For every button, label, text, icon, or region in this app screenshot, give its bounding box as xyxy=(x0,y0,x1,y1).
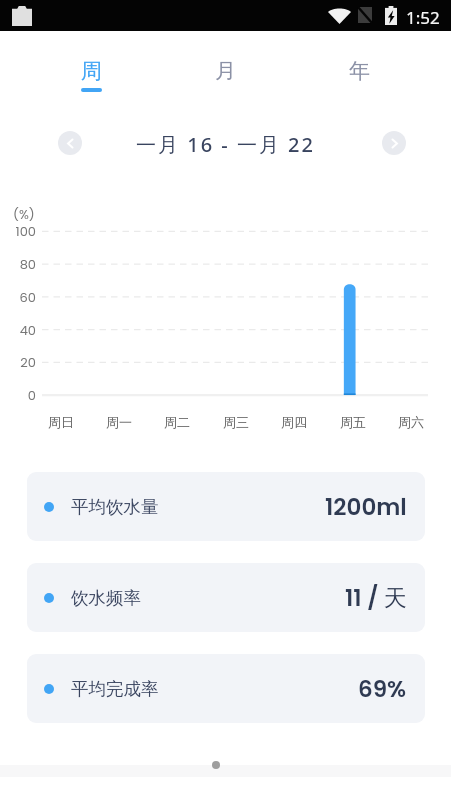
staticText: 80 xyxy=(4,255,36,273)
staticText: 周五 xyxy=(324,414,382,430)
staticText: 周六 xyxy=(382,414,440,430)
staticText: 月 xyxy=(215,58,236,84)
staticText: 周日 xyxy=(32,414,90,430)
button[interactable]: 平均完成率 xyxy=(27,654,425,723)
button[interactable]: 周 xyxy=(25,58,158,94)
staticText: 40 xyxy=(4,321,36,339)
button[interactable]: Previous week xyxy=(58,131,82,155)
staticText: 69% xyxy=(358,673,407,705)
staticText: 饮水频率 xyxy=(71,587,141,609)
staticText: 周三 xyxy=(207,414,265,430)
staticText: 周 xyxy=(81,58,102,84)
staticText: 一月 16 - 一月 22 xyxy=(136,131,315,155)
staticText: 1:52 xyxy=(406,6,440,29)
button[interactable]: Next week xyxy=(382,131,406,155)
staticText: 周一 xyxy=(90,414,148,430)
staticText: 0 xyxy=(4,386,36,404)
staticText: 11 / 天 xyxy=(345,582,407,614)
staticText: 平均饮水量 xyxy=(71,496,159,518)
button[interactable]: 年 xyxy=(292,58,426,94)
staticText: 年 xyxy=(349,58,370,84)
button[interactable]: 平均饮水量 xyxy=(27,472,425,541)
button[interactable]: 月 xyxy=(158,58,292,94)
button[interactable]: 饮水频率 xyxy=(27,563,425,632)
staticText: 60 xyxy=(4,288,36,306)
staticText: 20 xyxy=(4,353,36,371)
staticText: 100 xyxy=(4,222,36,240)
staticText: 1200ml xyxy=(325,491,407,523)
staticText: 平均完成率 xyxy=(71,678,159,700)
staticText: 周二 xyxy=(148,414,206,430)
staticText: (%) xyxy=(13,205,35,223)
staticText: 周四 xyxy=(265,414,323,430)
